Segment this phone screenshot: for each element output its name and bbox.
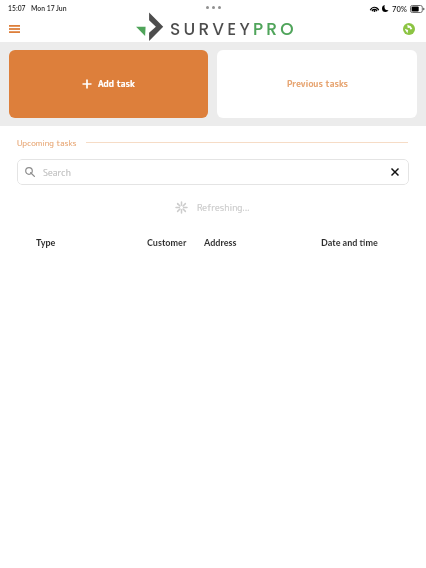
staticText: Add task bbox=[98, 78, 135, 90]
button[interactable]: Add task bbox=[9, 50, 208, 118]
staticText: Customer bbox=[147, 237, 187, 248]
staticText: PRO bbox=[253, 17, 297, 41]
staticText: Type bbox=[36, 237, 56, 248]
staticText: Mon 17 Jun bbox=[31, 4, 67, 12]
staticText: 15:07 bbox=[8, 4, 26, 12]
button[interactable]: Change language bbox=[400, 20, 418, 38]
staticText: Upcoming tasks bbox=[17, 137, 77, 148]
staticText: Refreshing... bbox=[197, 201, 250, 214]
button[interactable]: Search bbox=[17, 159, 409, 185]
button[interactable]: Previous tasks bbox=[217, 50, 417, 118]
button[interactable]: Clear search bbox=[383, 160, 407, 184]
staticText: 70% bbox=[392, 4, 408, 13]
staticText: Search bbox=[43, 166, 71, 179]
button[interactable]: Open navigation menu bbox=[4, 19, 24, 39]
staticText: Address bbox=[204, 237, 237, 248]
staticText: Date and time bbox=[321, 237, 378, 248]
staticText: Previous tasks bbox=[287, 78, 348, 90]
staticText: SURVEY bbox=[170, 17, 253, 41]
